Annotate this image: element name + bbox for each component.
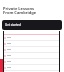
button[interactable] (4, 53, 59, 58)
button[interactable] (4, 59, 59, 64)
button[interactable]: Get started (2, 20, 62, 30)
staticText: Private Lessons From Cambridge (3, 6, 37, 15)
button[interactable] (4, 47, 59, 52)
button[interactable] (4, 65, 59, 70)
staticText: Get started (5, 23, 21, 27)
button[interactable] (4, 35, 59, 40)
button[interactable] (4, 41, 59, 46)
